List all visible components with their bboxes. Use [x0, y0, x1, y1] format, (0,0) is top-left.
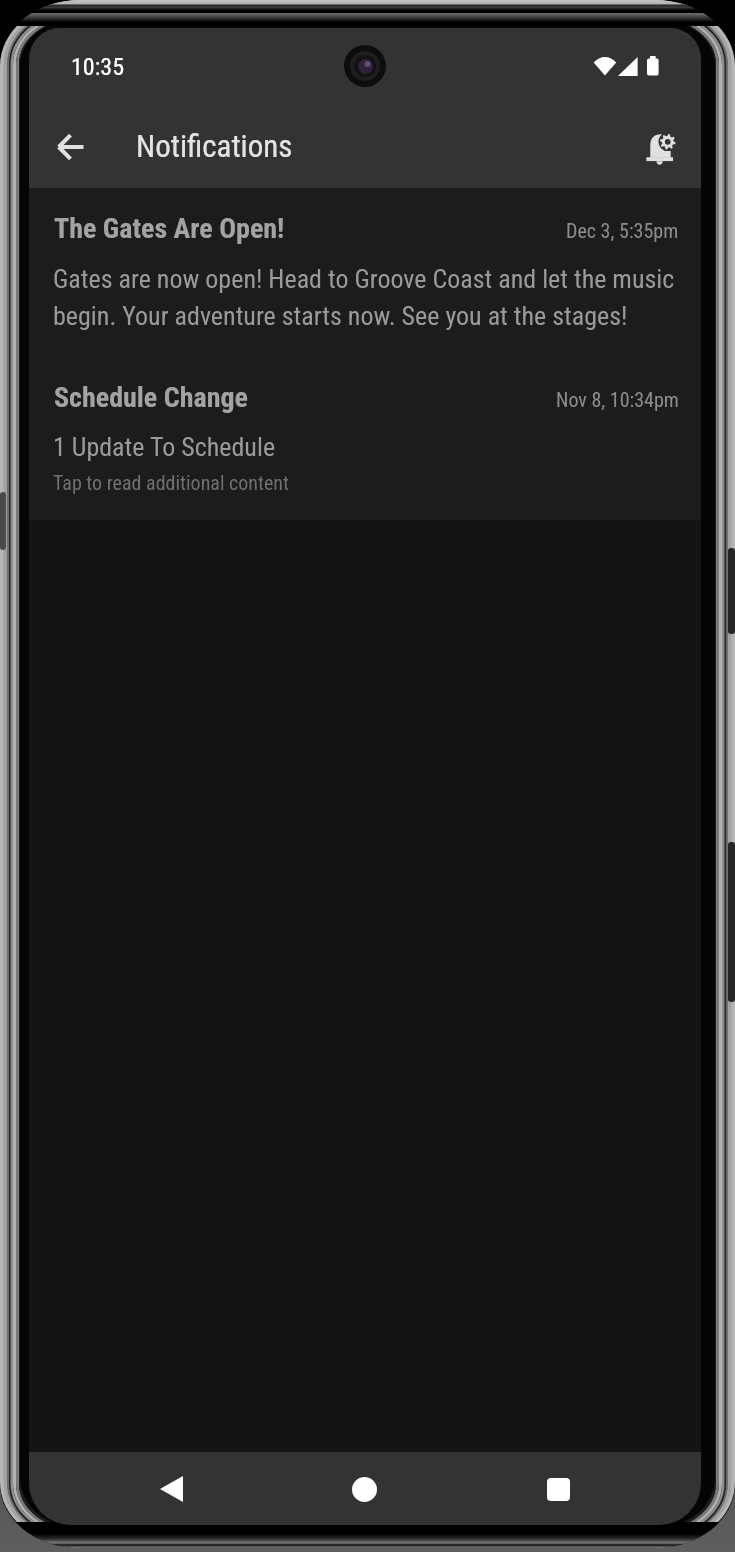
staticText: Notifications: [136, 128, 293, 164]
button[interactable]: Home: [334, 1459, 394, 1519]
button[interactable]: Notification settings: [640, 122, 676, 158]
button[interactable]: Recents: [528, 1459, 588, 1519]
staticText: 1 Update To Schedule: [53, 432, 276, 462]
button[interactable]: Schedule Change: [29, 354, 701, 520]
button[interactable]: Back: [141, 1459, 201, 1519]
staticText: Nov 8, 10:34pm: [556, 388, 679, 411]
button[interactable]: Back: [47, 123, 95, 171]
staticText: Tap to read additional content: [53, 471, 289, 494]
staticText: Schedule Change: [54, 381, 248, 414]
staticText: Dec 3, 5:35pm: [566, 219, 679, 242]
button[interactable]: The Gates Are Open!: [29, 188, 701, 354]
staticText: The Gates Are Open!: [54, 212, 285, 245]
staticText: 10:35: [71, 53, 124, 81]
staticText: Gates are now open! Head to Groove Coast…: [53, 264, 679, 331]
